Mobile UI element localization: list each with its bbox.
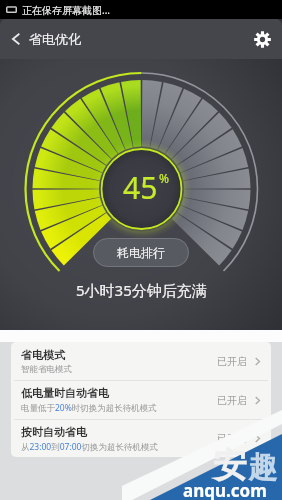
staticText: 5小时35分钟后充满: [76, 280, 207, 300]
staticText: 低电量时自动省电: [21, 386, 109, 400]
button[interactable]: 省电优化: [0, 19, 87, 59]
button[interactable]: 低电量时自动省电: [11, 381, 271, 419]
button[interactable]: 省电模式: [11, 342, 271, 380]
staticText: 安: [213, 444, 247, 487]
staticText: 已开启: [217, 355, 247, 368]
staticText: 45: [123, 167, 158, 208]
staticText: 已开启: [217, 432, 247, 445]
staticText: %: [159, 170, 169, 186]
button[interactable]: Settings: [242, 19, 282, 59]
staticText: 耗电排行: [117, 245, 165, 260]
staticText: 从23:00到07:00切换为超长待机模式: [21, 441, 158, 453]
staticText: 省电模式: [21, 348, 65, 362]
staticText: 省电优化: [29, 31, 81, 47]
staticText: 趣: [248, 449, 277, 486]
staticText: 已开启: [217, 394, 247, 407]
button[interactable]: 耗电排行: [93, 238, 189, 267]
staticText: anqu.com: [183, 479, 267, 500]
staticText: 智能省电模式: [21, 364, 72, 375]
staticText: 按时自动省电: [21, 425, 87, 439]
staticText: 正在保存屏幕截图...: [22, 3, 111, 17]
button[interactable]: 按时自动省电: [11, 420, 271, 457]
staticText: 电量低于20%时切换为超长待机模式: [21, 402, 157, 414]
